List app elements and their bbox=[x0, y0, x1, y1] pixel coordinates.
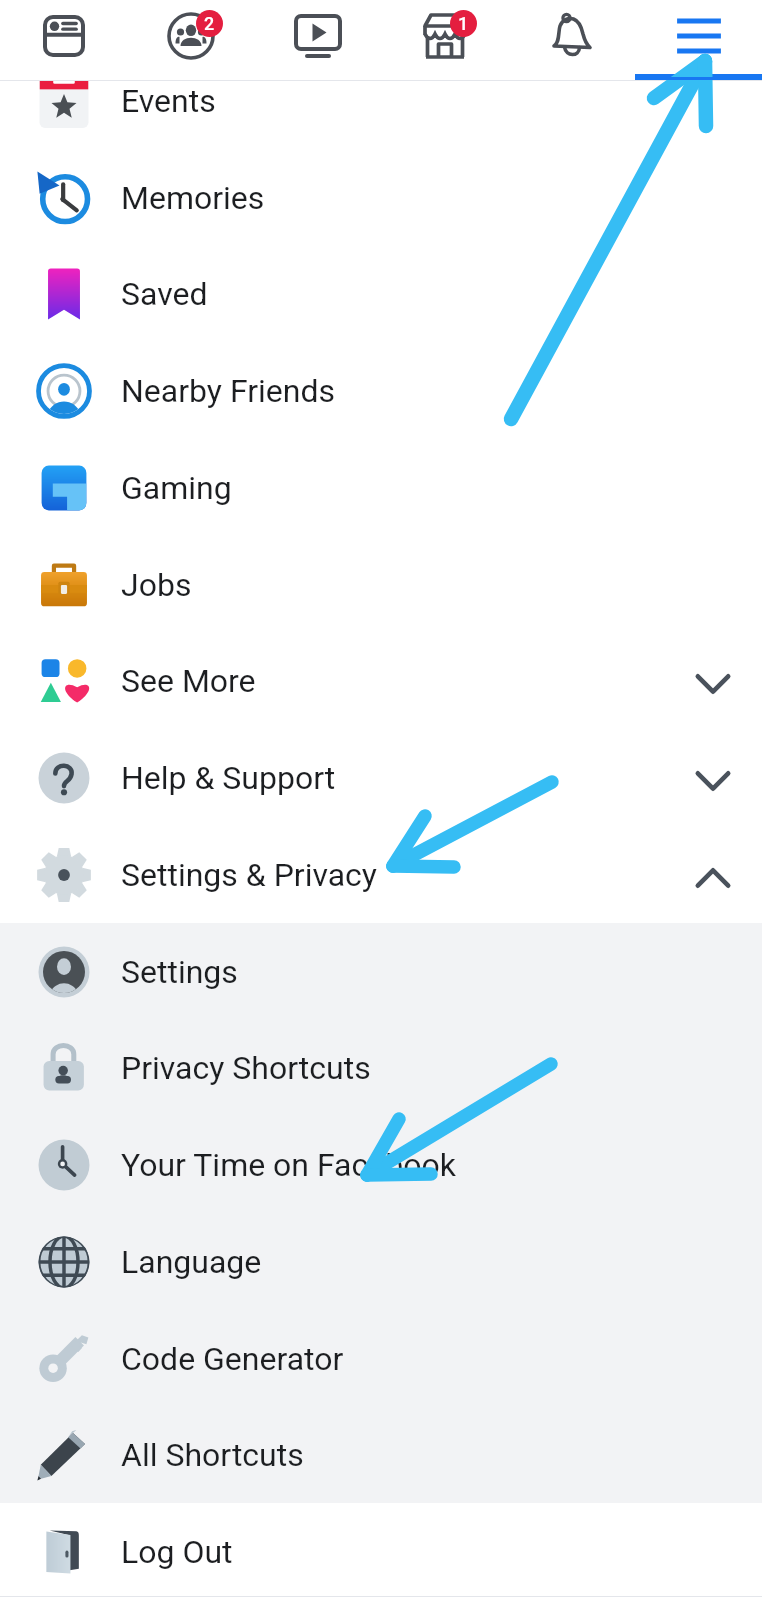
button[interactable]: Menu bbox=[635, 0, 762, 74]
staticText: Your Time on Facebook bbox=[121, 1146, 456, 1184]
button[interactable]: Language bbox=[0, 1213, 762, 1310]
button[interactable]: Saved bbox=[0, 246, 762, 342]
button[interactable]: Settings & Privacy bbox=[0, 826, 762, 923]
staticText: 1 bbox=[458, 13, 469, 34]
staticText: Gaming bbox=[121, 469, 232, 507]
button[interactable]: Events bbox=[0, 81, 762, 149]
button[interactable]: Gaming bbox=[0, 439, 762, 536]
staticText: Saved bbox=[121, 275, 208, 313]
staticText: Nearby Friends bbox=[121, 372, 336, 410]
staticText: Events bbox=[121, 82, 216, 120]
staticText: See More bbox=[121, 662, 256, 700]
staticText: Privacy Shortcuts bbox=[121, 1049, 371, 1087]
staticText: Jobs bbox=[121, 566, 192, 604]
button[interactable]: Privacy Shortcuts bbox=[0, 1020, 762, 1116]
button[interactable]: Log Out bbox=[0, 1503, 762, 1600]
staticText: Log Out bbox=[121, 1533, 233, 1571]
button[interactable]: All Shortcuts bbox=[0, 1407, 762, 1503]
button[interactable]: Jobs bbox=[0, 536, 762, 633]
button[interactable]: Your Time on Facebook bbox=[0, 1116, 762, 1213]
button[interactable]: Watch bbox=[254, 0, 381, 74]
button[interactable]: Notifications bbox=[508, 0, 635, 74]
button[interactable]: Marketplace bbox=[381, 0, 508, 74]
button[interactable]: See More bbox=[0, 633, 762, 729]
staticText: Settings & Privacy bbox=[121, 856, 377, 894]
button[interactable]: Code Generator bbox=[0, 1310, 762, 1407]
staticText: Memories bbox=[121, 179, 265, 217]
staticText: 2 bbox=[204, 13, 215, 34]
button[interactable]: News Feed bbox=[0, 0, 127, 74]
staticText: Help & Support bbox=[121, 759, 336, 797]
staticText: All Shortcuts bbox=[121, 1436, 304, 1474]
staticText: Code Generator bbox=[121, 1340, 344, 1378]
staticText: Settings bbox=[121, 953, 238, 991]
button[interactable]: Memories bbox=[0, 149, 762, 246]
staticText: Language bbox=[121, 1243, 262, 1281]
button[interactable]: Friend Requests bbox=[127, 0, 254, 74]
button[interactable]: Nearby Friends bbox=[0, 342, 762, 439]
button[interactable]: Settings bbox=[0, 923, 762, 1020]
button[interactable]: Help & Support bbox=[0, 729, 762, 826]
